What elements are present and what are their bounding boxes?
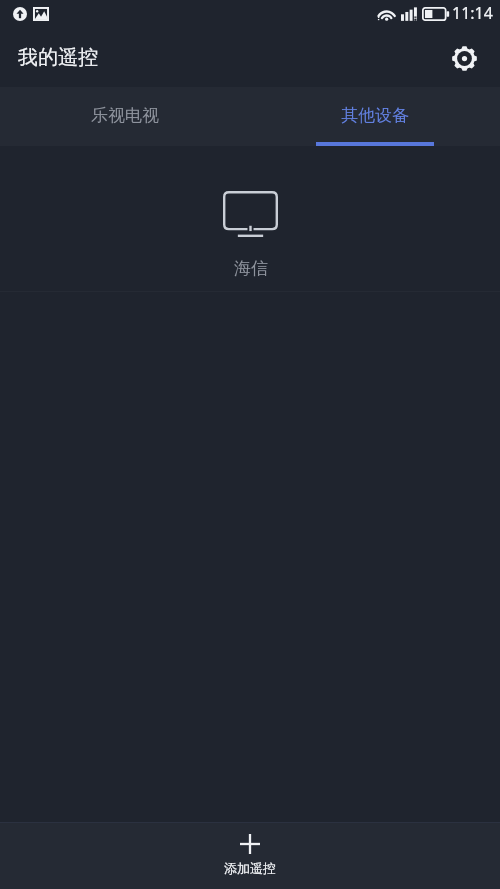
staticText: 11:14 [452, 2, 493, 24]
staticText: 我的遥控 [18, 45, 98, 70]
button[interactable]: 海信 [0, 146, 500, 292]
staticText: 其他设备 [341, 105, 409, 126]
staticText: 海信 [234, 258, 268, 279]
button[interactable]: 乐视电视 [0, 87, 250, 146]
button[interactable]: 其他设备 [250, 87, 500, 146]
button[interactable]: Settings [442, 36, 486, 80]
staticText: 添加遥控 [224, 860, 276, 876]
staticText: 乐视电视 [91, 105, 159, 126]
button[interactable]: 添加遥控 [0, 823, 500, 889]
